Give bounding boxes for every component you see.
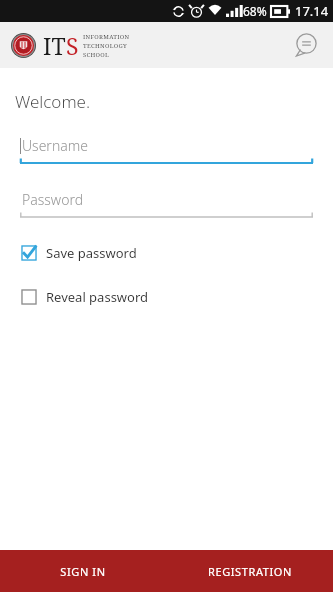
button[interactable]: Password	[20, 186, 313, 218]
staticText: 68%	[243, 3, 267, 19]
staticText: Welcome.	[15, 90, 91, 113]
button[interactable]: Username	[20, 132, 313, 164]
staticText: Username	[22, 136, 88, 155]
staticText: REGISTRATION	[208, 564, 292, 579]
staticText: SCHOOL	[83, 51, 110, 59]
staticText: SIGN IN	[60, 564, 106, 579]
staticText: TECHNOLOGY	[83, 42, 127, 50]
button[interactable]: SIGN IN	[0, 550, 166, 592]
staticText: Reveal password	[46, 288, 149, 306]
staticText: IT	[43, 30, 66, 61]
staticText: Save password	[46, 244, 137, 262]
staticText: 17.14	[295, 2, 329, 20]
button[interactable]: REGISTRATION	[166, 550, 333, 592]
staticText: INFORMATION	[83, 33, 130, 41]
button[interactable]: Save password	[20, 240, 313, 266]
button[interactable]: Messages	[289, 28, 323, 62]
button[interactable]: Reveal password	[20, 284, 313, 310]
staticText: Password	[22, 190, 84, 209]
staticText: S	[66, 30, 79, 61]
